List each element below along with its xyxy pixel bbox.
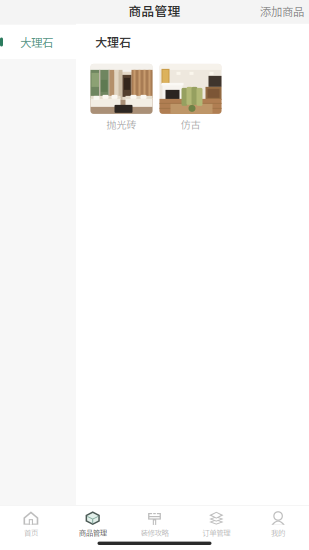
staticText: 大理石 <box>20 34 53 50</box>
staticText: 我的 <box>271 527 285 538</box>
button[interactable]: 添加商品 <box>254 0 309 26</box>
button[interactable]: 商品管理 <box>62 511 124 538</box>
staticText: 商品管理 <box>128 1 180 20</box>
staticText: 首页 <box>24 527 38 538</box>
staticText: 装修攻略 <box>140 527 168 538</box>
staticText: 订单管理 <box>202 527 230 538</box>
staticText: 抛光砖 <box>106 117 136 131</box>
button[interactable]: 大理石 <box>0 25 76 59</box>
button[interactable]: 抛光砖 <box>90 64 152 131</box>
button[interactable]: 首页 <box>0 511 62 538</box>
button[interactable]: 我的 <box>247 511 309 538</box>
button[interactable]: 仿古 <box>159 64 221 131</box>
staticText: 大理石 <box>95 33 131 50</box>
staticText: 商品管理 <box>79 527 107 538</box>
staticText: 仿古 <box>180 117 200 131</box>
staticText: 添加商品 <box>260 3 304 19</box>
button[interactable]: 订单管理 <box>185 511 247 538</box>
button[interactable]: 装修攻略 <box>124 511 185 538</box>
